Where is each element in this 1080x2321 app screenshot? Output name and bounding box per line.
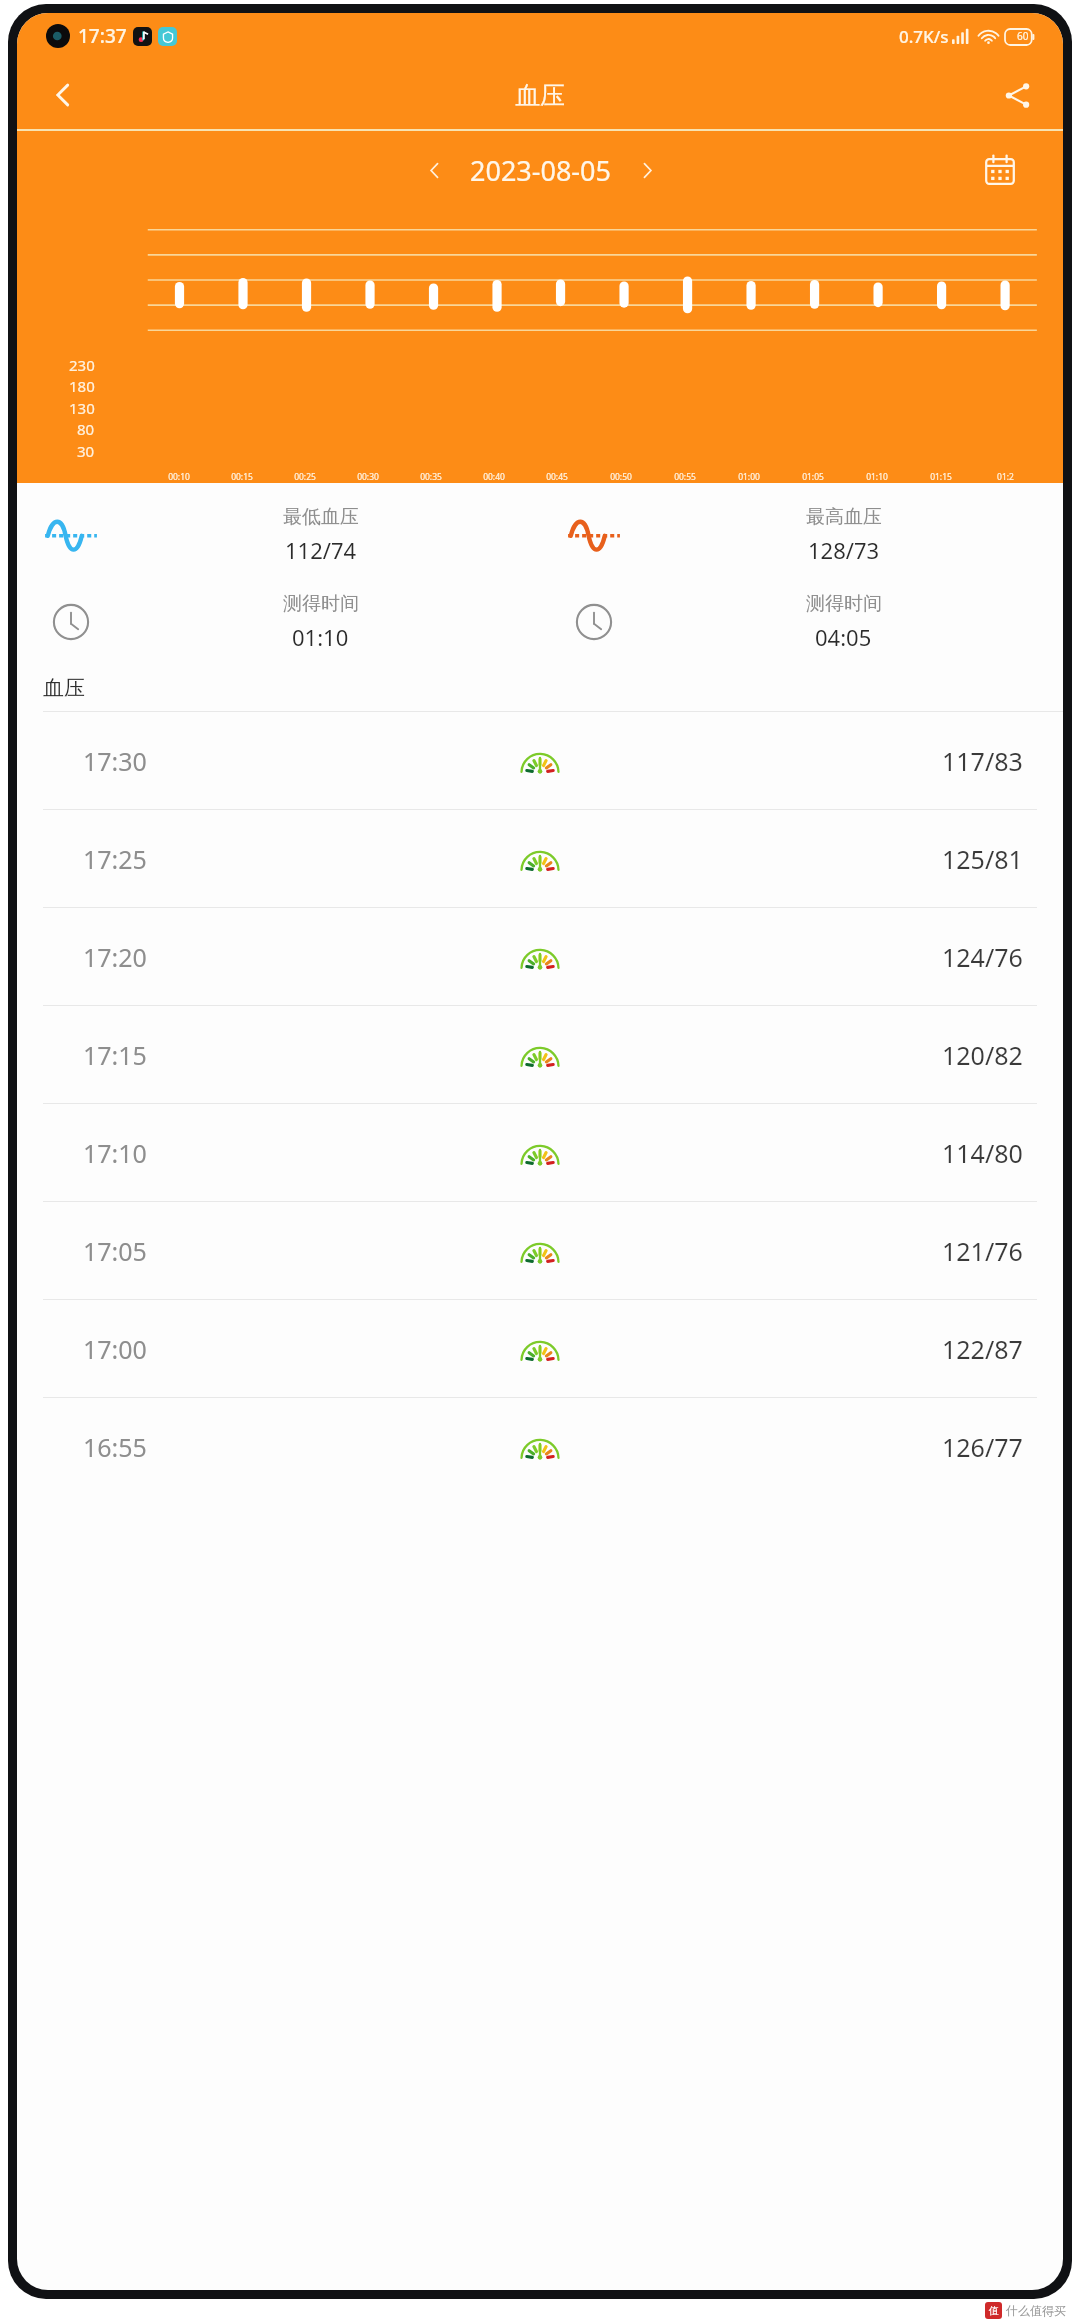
button[interactable]: 17:00 <box>17 1300 1063 1397</box>
staticText: 124/76 <box>942 940 1023 974</box>
staticText: 00:45 <box>546 471 568 483</box>
staticText: 00:55 <box>674 471 696 483</box>
staticText: 17:37 <box>78 23 127 49</box>
staticText: 测得时间 <box>806 592 882 616</box>
staticText: 01:15 <box>930 471 952 483</box>
staticText: 180 <box>69 376 95 396</box>
button[interactable]: Back <box>37 69 89 121</box>
staticText: 126/77 <box>942 1430 1023 1464</box>
staticText: 00:35 <box>420 471 442 483</box>
staticText: 122/87 <box>942 1332 1023 1366</box>
button[interactable]: 17:15 <box>17 1006 1063 1103</box>
staticText: 00:15 <box>231 471 253 483</box>
staticText: 120/82 <box>942 1038 1023 1072</box>
button[interactable]: 17:30 <box>17 712 1063 809</box>
staticText: 最低血压 <box>283 505 359 529</box>
staticText: 00:50 <box>610 471 632 483</box>
staticText: 17:30 <box>83 744 147 778</box>
staticText: 00:10 <box>168 471 190 483</box>
staticText: 121/76 <box>942 1234 1023 1268</box>
staticText: 测得时间 <box>283 592 359 616</box>
button[interactable]: 17:20 <box>17 908 1063 1005</box>
button[interactable]: 测得时间 <box>540 579 1063 665</box>
staticText: 17:10 <box>83 1136 147 1170</box>
staticText: 17:20 <box>83 940 147 974</box>
button[interactable]: 17:25 <box>17 810 1063 907</box>
staticText: 17:25 <box>83 842 147 876</box>
button[interactable]: 最高血压 <box>540 491 1063 579</box>
staticText: 血压 <box>515 80 565 111</box>
staticText: 什么值得买 <box>1006 2303 1066 2318</box>
staticText: 01:00 <box>738 471 760 483</box>
button[interactable]: 16:55 <box>17 1398 1063 1495</box>
staticText: 128/73 <box>808 535 880 565</box>
staticText: 04:05 <box>815 622 872 652</box>
staticText: 125/81 <box>942 842 1023 876</box>
staticText: 80 <box>77 419 95 439</box>
staticText: 00:40 <box>483 471 505 483</box>
staticText: 60 <box>1017 29 1029 43</box>
button[interactable]: Next day <box>625 148 669 192</box>
staticText: 01:05 <box>802 471 824 483</box>
staticText: 01:2 <box>997 471 1014 483</box>
button[interactable]: Previous day <box>412 148 456 192</box>
button[interactable]: 最低血压 <box>17 491 540 579</box>
staticText: 16:55 <box>83 1430 147 1464</box>
staticText: 17:00 <box>83 1332 147 1366</box>
staticText: 00:30 <box>357 471 379 483</box>
staticText: 17:15 <box>83 1038 147 1072</box>
staticText: 230 <box>69 355 95 375</box>
button[interactable]: Share <box>991 69 1043 121</box>
staticText: 0.7K/s <box>899 25 949 48</box>
staticText: 114/80 <box>942 1136 1023 1170</box>
button[interactable]: 17:10 <box>17 1104 1063 1201</box>
button[interactable]: Pick date <box>977 147 1023 193</box>
staticText: 00:25 <box>294 471 316 483</box>
staticText: 2023-08-05 <box>470 152 611 189</box>
staticText: 01:10 <box>866 471 888 483</box>
staticText: 01:10 <box>292 622 349 652</box>
staticText: 130 <box>69 398 95 418</box>
button[interactable]: 测得时间 <box>17 579 540 665</box>
staticText: 30 <box>77 441 95 461</box>
staticText: 值 <box>989 2304 999 2317</box>
staticText: 112/74 <box>285 535 357 565</box>
staticText: 117/83 <box>942 744 1023 778</box>
staticText: 最高血压 <box>806 505 882 529</box>
button[interactable]: 17:05 <box>17 1202 1063 1299</box>
staticText: 血压 <box>43 675 85 701</box>
staticText: 17:05 <box>83 1234 147 1268</box>
